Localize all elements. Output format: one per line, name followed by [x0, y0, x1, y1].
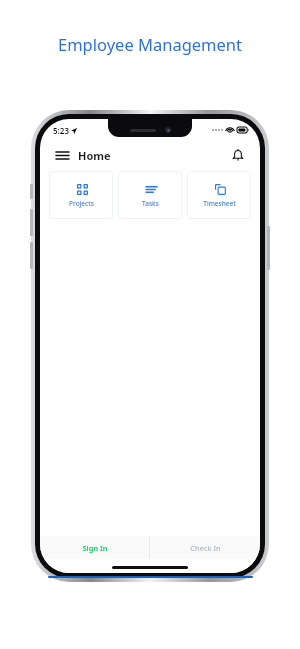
staticText: Check In: [190, 543, 221, 553]
button[interactable]: Notifications: [228, 145, 248, 165]
staticText: Home: [78, 148, 111, 163]
staticText: Tasks: [142, 199, 159, 208]
button[interactable]: Timesheet: [187, 171, 251, 219]
staticText: Employee Management: [58, 33, 242, 55]
staticText: Sign In: [82, 543, 108, 553]
button[interactable]: Open navigation menu: [52, 145, 72, 165]
button[interactable]: Tasks: [118, 171, 182, 219]
staticText: Projects: [69, 199, 94, 208]
button[interactable]: Projects: [49, 171, 113, 219]
staticText: Timesheet: [203, 199, 236, 208]
button[interactable]: Check In: [150, 536, 260, 559]
staticText: 5:23: [53, 125, 69, 136]
button[interactable]: Sign In: [40, 536, 149, 559]
